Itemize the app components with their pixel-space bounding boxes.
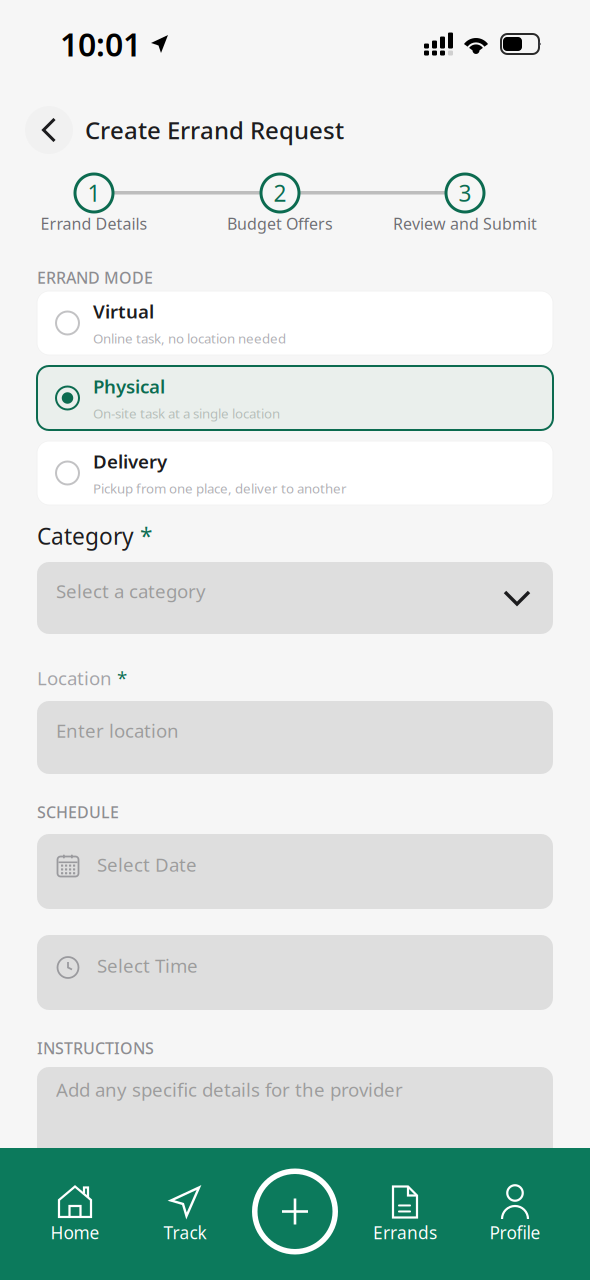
- staticText: Errand Details: [40, 213, 147, 234]
- staticText: Virtual: [93, 299, 154, 324]
- button[interactable]: Physical: [37, 366, 553, 430]
- button[interactable]: Create new errand: [251, 1167, 339, 1260]
- staticText: 10:01: [60, 23, 141, 65]
- button[interactable]: Select Date: [37, 834, 553, 909]
- staticText: INSTRUCTIONS: [37, 1037, 154, 1059]
- button[interactable]: Enter location: [37, 701, 553, 774]
- staticText: On-site task at a single location: [93, 404, 280, 422]
- button[interactable]: Back: [24, 105, 74, 155]
- button[interactable]: Profile: [460, 1177, 570, 1251]
- staticText: Review and Submit: [393, 213, 537, 234]
- staticText: Budget Offers: [227, 213, 333, 234]
- staticText: Select Date: [97, 852, 197, 877]
- staticText: SCHEDULE: [37, 801, 119, 823]
- staticText: Physical: [93, 374, 165, 399]
- staticText: Delivery: [93, 449, 167, 474]
- staticText: 2: [273, 178, 286, 208]
- button[interactable]: Errands: [350, 1177, 460, 1251]
- staticText: Errands: [373, 1221, 437, 1244]
- staticText: Home: [50, 1221, 99, 1244]
- staticText: Pickup from one place, deliver to anothe…: [93, 479, 347, 497]
- staticText: Add any specific details for the provide…: [56, 1077, 403, 1102]
- staticText: Track: [163, 1221, 206, 1244]
- staticText: *: [117, 666, 127, 690]
- staticText: Select Time: [97, 953, 198, 978]
- button[interactable]: Delivery: [37, 441, 553, 505]
- staticText: Select a category: [56, 579, 206, 603]
- button[interactable]: Home: [20, 1177, 130, 1251]
- button[interactable]: Virtual: [37, 291, 553, 355]
- staticText: Profile: [489, 1221, 540, 1244]
- staticText: Create Errand Request: [85, 114, 344, 146]
- staticText: Online task, no location needed: [93, 329, 286, 347]
- button[interactable]: Track: [130, 1177, 240, 1251]
- staticText: 3: [458, 178, 471, 208]
- staticText: ERRAND MODE: [37, 267, 153, 288]
- staticText: Enter location: [56, 718, 179, 743]
- button[interactable]: Select a category: [37, 562, 553, 634]
- staticText: Location: [37, 666, 117, 690]
- staticText: *: [140, 521, 152, 551]
- staticText: Category: [37, 521, 140, 551]
- staticText: 1: [87, 178, 100, 208]
- button[interactable]: Select Time: [37, 935, 553, 1010]
